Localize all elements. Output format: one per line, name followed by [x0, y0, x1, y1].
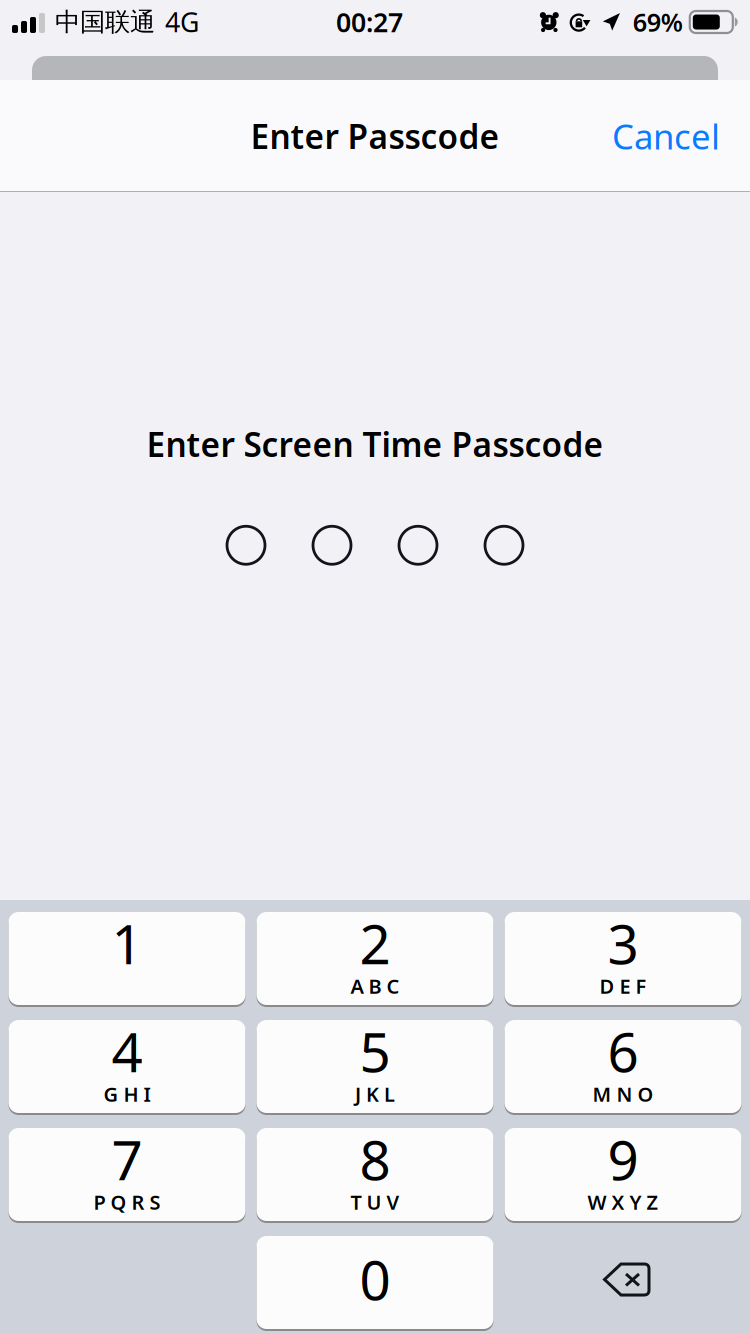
- button[interactable]: 8: [256, 1128, 493, 1222]
- staticText: 1: [111, 907, 142, 979]
- staticText: 4G: [165, 4, 199, 40]
- staticText: Cancel: [612, 113, 720, 159]
- staticText: D E F: [599, 973, 646, 999]
- staticText: 9: [607, 1123, 638, 1195]
- staticText: 00:27: [336, 4, 403, 40]
- button[interactable]: 9: [504, 1128, 741, 1222]
- staticText: 2: [359, 907, 390, 979]
- button[interactable]: 1: [8, 912, 245, 1006]
- button[interactable]: 5: [256, 1020, 493, 1114]
- staticText: W X Y Z: [587, 1189, 658, 1215]
- staticText: 5: [359, 1015, 390, 1087]
- staticText: Enter Screen Time Passcode: [146, 422, 603, 466]
- staticText: P Q R S: [93, 1189, 160, 1215]
- staticText: 6: [607, 1015, 638, 1087]
- staticText: M N O: [592, 1081, 653, 1107]
- button[interactable]: Delete: [504, 1236, 741, 1330]
- button[interactable]: 0: [256, 1236, 493, 1330]
- button[interactable]: Cancel: [600, 103, 732, 169]
- button[interactable]: 3: [504, 912, 741, 1006]
- staticText: G H I: [103, 1081, 150, 1107]
- button[interactable]: 4: [8, 1020, 245, 1114]
- staticText: 69%: [633, 5, 683, 39]
- staticText: A B C: [350, 973, 399, 999]
- staticText: Enter Passcode: [250, 114, 499, 158]
- staticText: 3: [607, 907, 638, 979]
- staticText: 0: [359, 1243, 390, 1315]
- button[interactable]: 7: [8, 1128, 245, 1222]
- button[interactable]: 2: [256, 912, 493, 1006]
- staticText: T U V: [350, 1189, 399, 1215]
- staticText: 4: [111, 1015, 142, 1087]
- staticText: 中国联通: [55, 6, 155, 37]
- staticText: 7: [111, 1123, 142, 1195]
- button[interactable]: 6: [504, 1020, 741, 1114]
- staticText: J K L: [355, 1081, 395, 1107]
- staticText: 8: [359, 1123, 390, 1195]
